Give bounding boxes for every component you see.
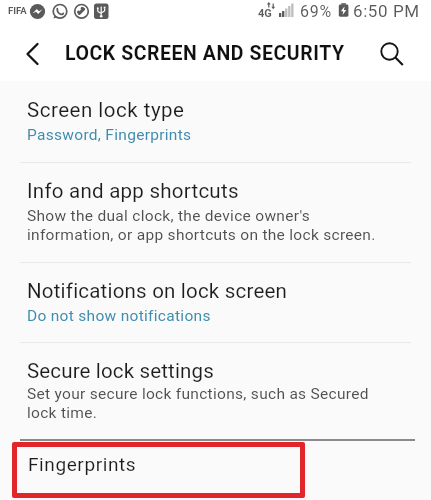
staticText: Do not show notifications xyxy=(27,307,211,325)
button[interactable]: Fingerprints xyxy=(0,441,431,500)
staticText: FIFA xyxy=(8,5,27,16)
staticText: Show the dual clock, the device owner's … xyxy=(27,207,376,244)
staticText: Screen lock type xyxy=(27,98,185,122)
staticText: 6:50 PM xyxy=(353,1,420,21)
staticText: Fingerprints xyxy=(28,453,137,475)
button[interactable] xyxy=(14,38,48,72)
button[interactable] xyxy=(374,36,410,70)
staticText: Set your secure lock functions, such as … xyxy=(27,385,369,422)
staticText: LOCK SCREEN AND SECURITY xyxy=(65,42,345,65)
button[interactable]: Info and app shortcuts xyxy=(0,163,431,262)
staticText: Password, Fingerprints xyxy=(27,126,192,144)
button[interactable]: Screen lock type xyxy=(0,81,431,162)
button[interactable]: Secure lock settings xyxy=(0,343,431,439)
button[interactable]: Notifications on lock screen xyxy=(0,263,431,342)
staticText: 69% xyxy=(300,2,332,21)
staticText: Info and app shortcuts xyxy=(27,179,239,203)
staticText: Notifications on lock screen xyxy=(27,279,288,303)
staticText: Secure lock settings xyxy=(27,359,214,383)
staticText: 4G xyxy=(258,7,272,20)
